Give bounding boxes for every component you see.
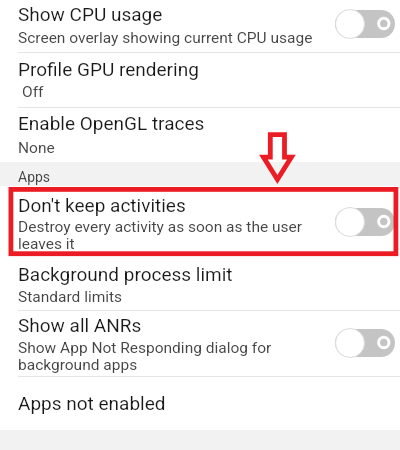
- staticText: None: [18, 139, 398, 157]
- staticText: Off: [22, 83, 400, 101]
- staticText: Background process limit: [18, 263, 233, 285]
- staticText: Screen overlay showing current CPU usage: [18, 29, 398, 47]
- staticText: Apps: [18, 169, 51, 185]
- button[interactable]: Toggle Show CPU usage: [335, 9, 395, 39]
- button[interactable]: Apps not enabled: [0, 377, 400, 425]
- staticText: Show App Not Responding dialog for backg…: [18, 339, 280, 374]
- button[interactable]: Toggle Don't keep activities: [335, 207, 395, 237]
- staticText: Enable OpenGL traces: [18, 112, 205, 134]
- staticText: Profile GPU rendering: [18, 58, 199, 80]
- button[interactable]: Show all ANRs: [0, 311, 400, 376]
- button[interactable]: Toggle Show all ANRs: [335, 328, 395, 358]
- staticText: Show CPU usage: [18, 3, 163, 25]
- staticText: Destroy every activity as soon as the us…: [18, 218, 308, 253]
- button[interactable]: Profile GPU rendering: [0, 53, 400, 107]
- button[interactable]: Background process limit: [0, 258, 400, 310]
- staticText: Standard limits: [18, 288, 398, 306]
- button[interactable]: Don't keep activities: [0, 188, 400, 258]
- staticText: Apps not enabled: [18, 392, 166, 414]
- button[interactable]: Enable OpenGL traces: [0, 108, 400, 162]
- button[interactable]: Show CPU usage: [0, 0, 400, 52]
- staticText: Don't keep activities: [18, 194, 186, 216]
- staticText: Show all ANRs: [18, 314, 142, 336]
